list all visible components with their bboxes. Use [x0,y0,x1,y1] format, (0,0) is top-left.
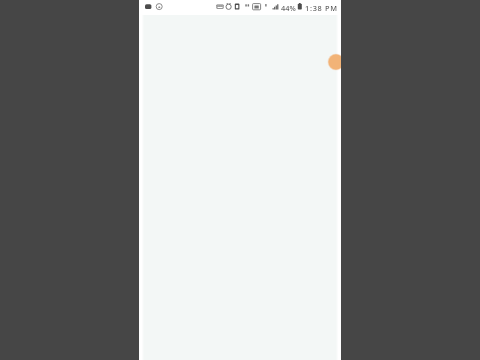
staticText: 1:38 PM [305,3,338,13]
button[interactable]: Compose [326,52,341,72]
staticText: 44% [281,3,296,13]
